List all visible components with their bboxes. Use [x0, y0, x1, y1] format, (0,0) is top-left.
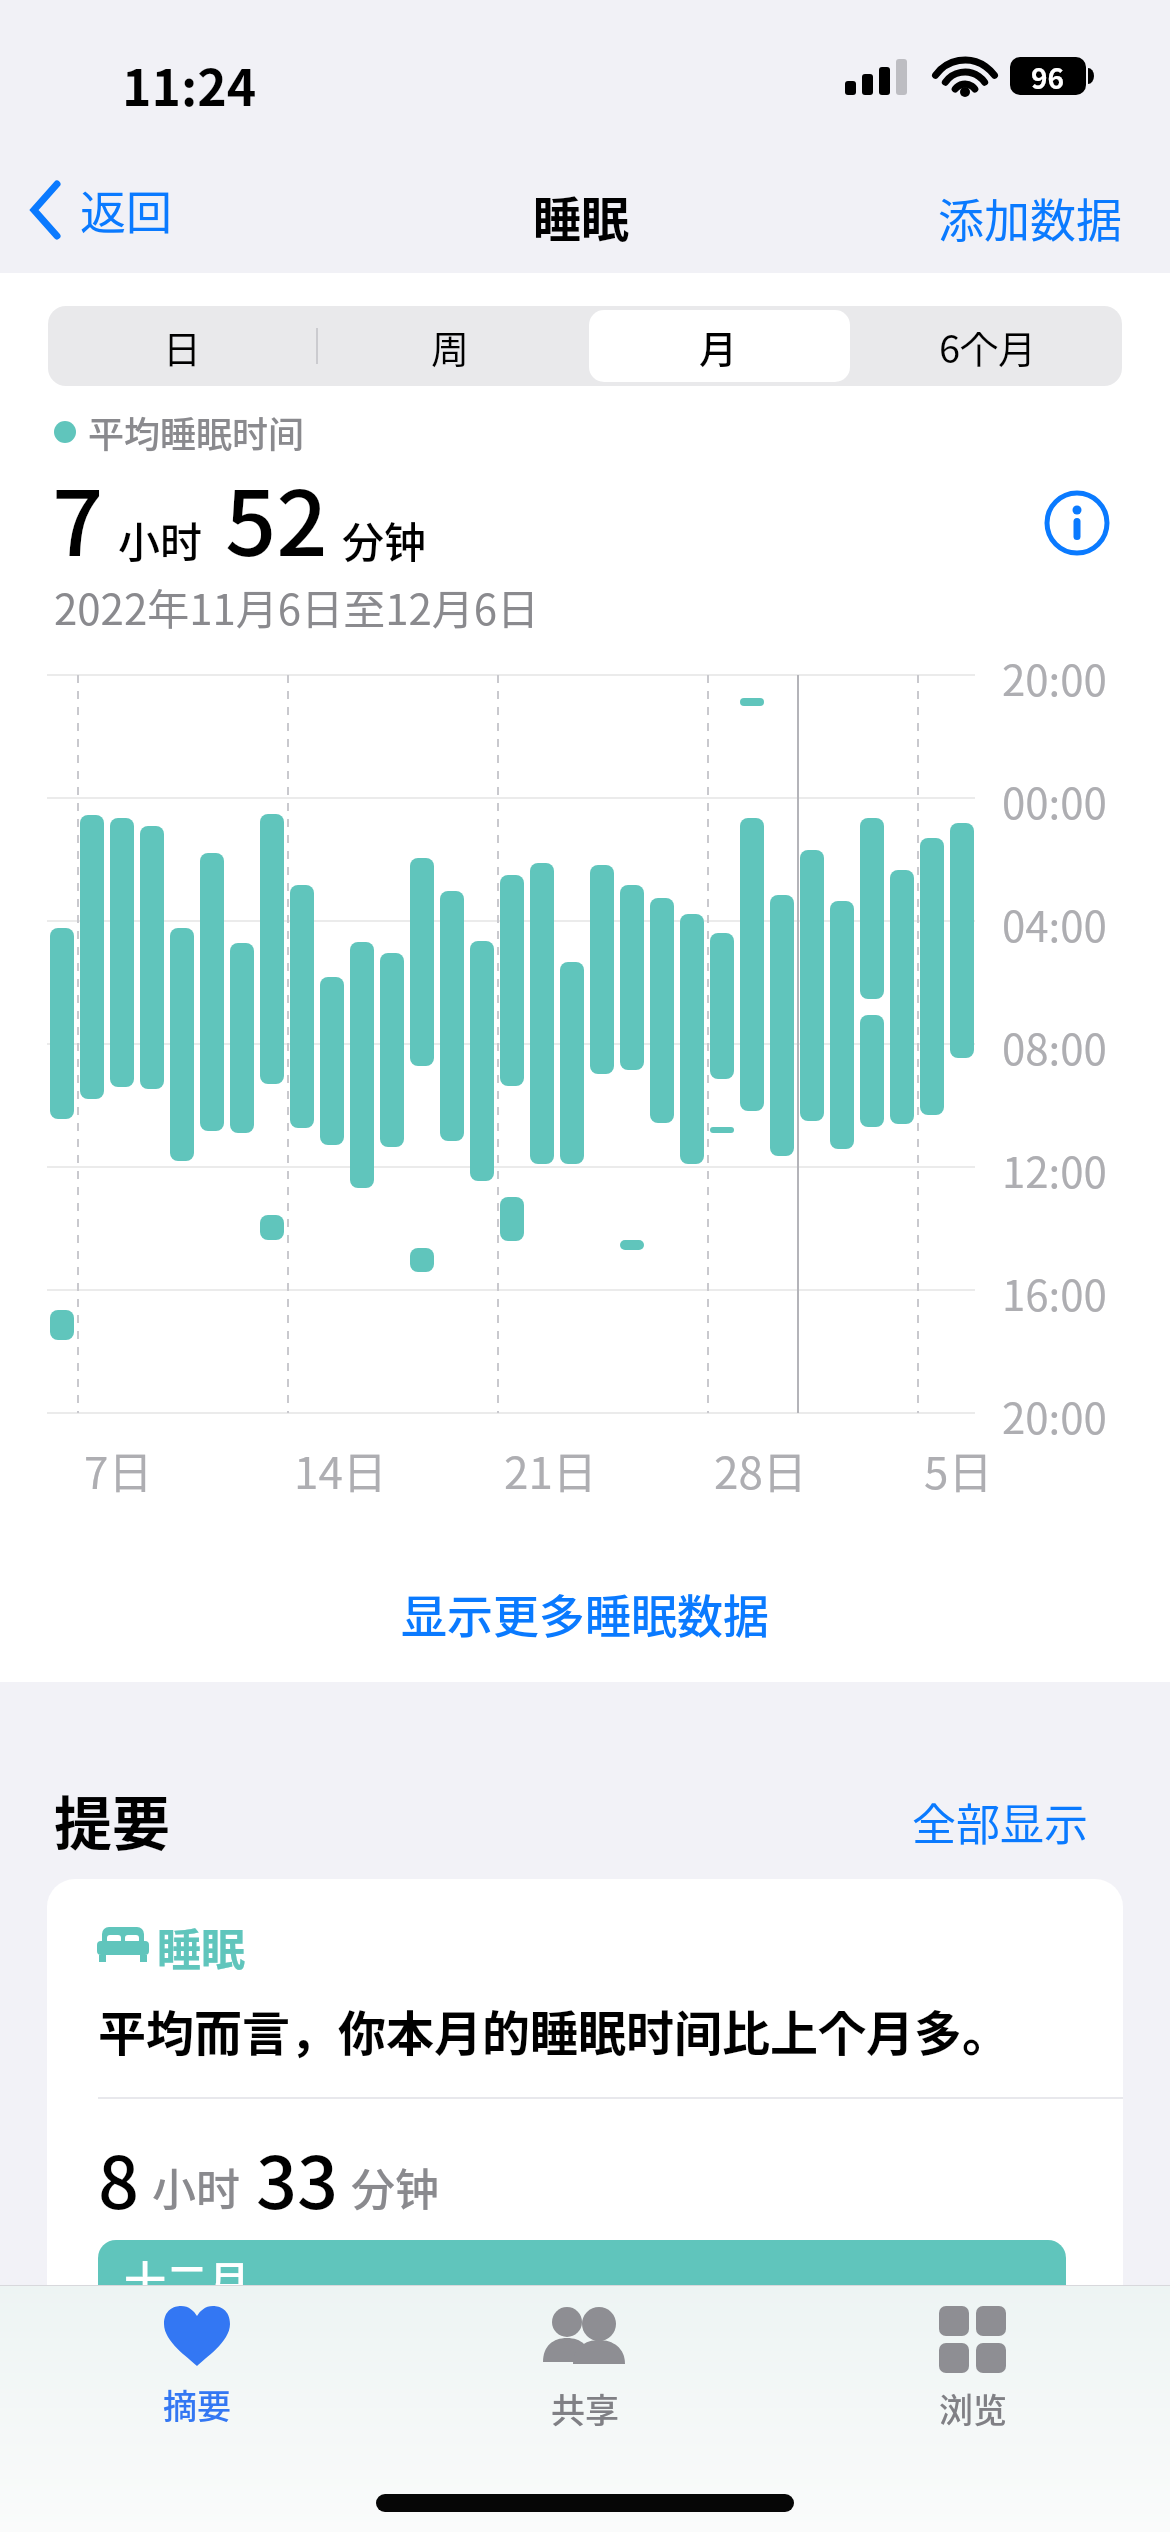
button[interactable]: 返回: [26, 176, 172, 243]
staticText: 14日: [294, 1438, 387, 1502]
staticText: 返回: [80, 176, 172, 243]
staticText: 6个月: [939, 319, 1037, 374]
staticText: 睡眠: [157, 1915, 245, 1979]
staticText: 周: [431, 319, 470, 374]
staticText: 5日: [924, 1438, 993, 1502]
button[interactable]: 周: [316, 306, 584, 386]
button[interactable]: 共享: [505, 2304, 665, 2444]
button[interactable]: 睡眠: [47, 1879, 1123, 2532]
staticText: 08:00: [1002, 1016, 1107, 1077]
staticText: 睡眠: [533, 181, 630, 251]
staticText: 04:00: [1002, 893, 1107, 954]
staticText: 小时: [118, 509, 203, 570]
staticText: 7日: [84, 1438, 153, 1502]
button[interactable]: 显示更多睡眠数据: [401, 1580, 769, 1647]
staticText: 摘要: [163, 2380, 231, 2429]
staticText: 平均而言，你本月的睡眠时间比上个月多。: [98, 1995, 1011, 2065]
button[interactable]: 浏览: [893, 2304, 1053, 2444]
button[interactable]: 摘要: [117, 2304, 277, 2444]
button[interactable]: 日: [48, 306, 316, 386]
staticText: 96: [1031, 57, 1065, 95]
staticText: 2022年11月6日至12月6日: [54, 576, 540, 637]
staticText: 20:00: [1002, 647, 1107, 708]
staticText: 12:00: [1002, 1139, 1107, 1200]
staticText: 00:00: [1002, 770, 1107, 831]
staticText: 浏览: [939, 2384, 1007, 2433]
staticText: 日: [163, 319, 202, 374]
staticText: 33: [256, 2125, 339, 2229]
staticText: 共享: [551, 2384, 619, 2433]
staticText: 28日: [714, 1438, 807, 1502]
staticText: 7: [52, 452, 104, 582]
staticText: 8: [98, 2125, 140, 2229]
button[interactable]: [1044, 490, 1110, 556]
staticText: 十二月: [124, 2248, 251, 2309]
staticText: 52: [225, 452, 328, 582]
button[interactable]: 6个月: [853, 306, 1122, 386]
staticText: 16:00: [1002, 1262, 1107, 1323]
staticText: 提要: [54, 1778, 171, 1862]
staticText: 平均睡眠时间: [88, 406, 305, 458]
staticText: 小时: [152, 2155, 240, 2219]
staticText: 20:00: [1002, 1385, 1107, 1446]
staticText: 月: [699, 319, 738, 374]
staticText: 21日: [504, 1438, 597, 1502]
staticText: 分钟: [342, 509, 427, 570]
staticText: 11:24: [122, 48, 257, 120]
staticText: 分钟: [351, 2155, 439, 2219]
button[interactable]: 月: [584, 306, 853, 386]
